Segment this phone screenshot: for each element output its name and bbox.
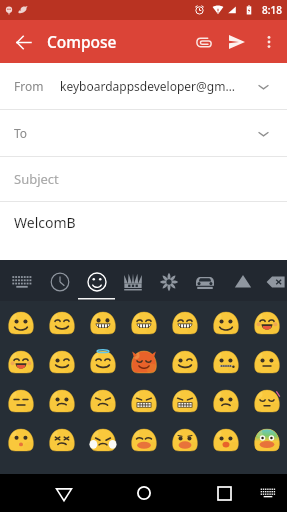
button[interactable]	[82, 381, 123, 420]
button[interactable]: Back	[46, 475, 82, 511]
staticText: To	[14, 125, 28, 141]
button[interactable]: Smileys	[79, 260, 115, 301]
button[interactable]	[123, 420, 164, 459]
button[interactable]: People	[115, 260, 151, 301]
button[interactable]: Travel	[187, 260, 223, 301]
button[interactable]: More options	[254, 27, 284, 57]
button[interactable]	[246, 342, 287, 381]
button[interactable]: Home	[126, 475, 162, 511]
button[interactable]	[205, 342, 246, 381]
staticText: WelcomB	[14, 213, 76, 232]
button[interactable]: Send	[220, 25, 254, 59]
button[interactable]	[123, 303, 164, 342]
button[interactable]: Keyboard	[4, 260, 40, 301]
button[interactable]	[82, 303, 123, 342]
button[interactable]: Switch keyboard	[252, 477, 284, 509]
staticText: Subject	[14, 170, 59, 188]
button[interactable]	[0, 303, 41, 342]
button[interactable]: Attach file	[186, 25, 220, 59]
button[interactable]	[164, 381, 205, 420]
button[interactable]	[0, 420, 41, 459]
button[interactable]: To	[0, 110, 287, 156]
staticText: 8:18	[262, 3, 282, 17]
button[interactable]: From	[0, 63, 287, 109]
staticText: keyboardappsdeveloper@gm…	[60, 78, 235, 94]
button[interactable]: Subject	[0, 157, 287, 201]
button[interactable]	[82, 342, 123, 381]
button[interactable]	[41, 420, 82, 459]
button[interactable]	[205, 381, 246, 420]
button[interactable]	[164, 303, 205, 342]
button[interactable]	[205, 303, 246, 342]
button[interactable]: Backspace	[258, 260, 287, 301]
button[interactable]	[0, 381, 41, 420]
button[interactable]	[41, 303, 82, 342]
button[interactable]	[123, 342, 164, 381]
button[interactable]	[123, 381, 164, 420]
button[interactable]	[164, 342, 205, 381]
button[interactable]	[246, 303, 287, 342]
button[interactable]	[205, 420, 246, 459]
button[interactable]: Recent	[42, 260, 78, 301]
button[interactable]	[246, 381, 287, 420]
button[interactable]	[246, 420, 287, 459]
button[interactable]: Nature	[151, 260, 187, 301]
button[interactable]	[41, 342, 82, 381]
button[interactable]	[82, 420, 123, 459]
button[interactable]	[41, 381, 82, 420]
button[interactable]: Recent apps	[206, 475, 242, 511]
button[interactable]	[164, 420, 205, 459]
button[interactable]: WelcomB	[0, 202, 287, 260]
button[interactable]: Navigate up	[6, 25, 40, 59]
staticText: Compose	[47, 31, 117, 52]
button[interactable]: Objects	[225, 260, 261, 301]
staticText: From	[14, 78, 44, 94]
button[interactable]	[0, 342, 41, 381]
